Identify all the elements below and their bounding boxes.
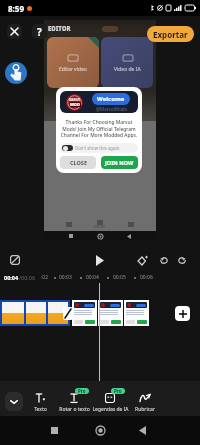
button[interactable]: Home bbox=[90, 420, 110, 440]
button[interactable]: Back bbox=[132, 420, 152, 440]
staticText: Exportar bbox=[153, 29, 188, 40]
button[interactable]: Undo bbox=[156, 252, 172, 268]
button[interactable]: Texto bbox=[21, 387, 59, 415]
staticText: 00:06 bbox=[140, 274, 153, 281]
staticText: @MarsutMods bbox=[96, 106, 127, 112]
button[interactable]: Exportar bbox=[147, 26, 194, 42]
button[interactable]: Redo bbox=[174, 252, 190, 268]
button[interactable]: AI enhance bbox=[134, 252, 150, 268]
button[interactable]: Rubricar bbox=[126, 387, 164, 415]
staticText: Don't show this again bbox=[75, 145, 120, 151]
staticText: MODS bbox=[70, 102, 81, 107]
button[interactable]: Rotar o texto bbox=[55, 387, 93, 415]
button[interactable] bbox=[72, 300, 97, 326]
staticText: 00:04 bbox=[86, 274, 99, 281]
button[interactable]: CLOSE bbox=[60, 156, 96, 169]
staticText: Pro bbox=[78, 388, 86, 394]
staticText: :02 bbox=[41, 274, 49, 281]
staticText: /00:06 bbox=[19, 274, 36, 281]
button[interactable]: Touch assistant bbox=[5, 62, 27, 84]
button[interactable] bbox=[0, 300, 70, 326]
button[interactable]: Collapse toolbar bbox=[5, 392, 23, 411]
staticText: Legendas de IA bbox=[92, 406, 129, 413]
button[interactable]: Mute audio bbox=[7, 252, 23, 268]
staticText: Editar video bbox=[59, 66, 87, 73]
staticText: 00:03 bbox=[59, 274, 72, 281]
staticText: 8:59 bbox=[8, 3, 24, 14]
button[interactable]: Add clip bbox=[175, 306, 190, 321]
button[interactable]: Editar video bbox=[47, 37, 99, 88]
staticText: Rotar o texto bbox=[59, 406, 90, 413]
staticText: CLOSE bbox=[70, 159, 87, 166]
staticText: Thanks For Choosing Marsut Mods! Join My… bbox=[60, 119, 138, 138]
button[interactable]: Legendas de IA bbox=[91, 387, 129, 415]
staticText: 00:04 bbox=[4, 274, 19, 281]
button[interactable]: Recents bbox=[44, 420, 64, 440]
button[interactable] bbox=[98, 300, 123, 326]
staticText: Video de IA bbox=[114, 66, 141, 73]
staticText: MARSUT bbox=[69, 98, 81, 102]
staticText: 00:05 bbox=[113, 274, 126, 281]
button[interactable]: Trim handle bbox=[63, 307, 73, 320]
button[interactable]: Help bbox=[32, 24, 47, 39]
staticText: EDITOR bbox=[48, 25, 71, 33]
staticText: Texto bbox=[34, 406, 47, 413]
staticText: ? bbox=[37, 25, 42, 39]
staticText: EDITOR bbox=[94, 225, 106, 229]
button[interactable]: Play bbox=[92, 252, 108, 268]
button[interactable] bbox=[124, 300, 149, 326]
button[interactable]: Close bbox=[7, 24, 22, 39]
staticText: Rubricar bbox=[135, 406, 155, 413]
staticText: Welcome bbox=[97, 95, 125, 103]
staticText: Pro bbox=[114, 388, 122, 394]
staticText: JOIN NOW bbox=[105, 159, 134, 166]
button[interactable]: Video de IA bbox=[101, 37, 153, 88]
button[interactable]: JOIN NOW bbox=[101, 156, 138, 169]
button[interactable]: Don't show this again bbox=[60, 143, 138, 153]
